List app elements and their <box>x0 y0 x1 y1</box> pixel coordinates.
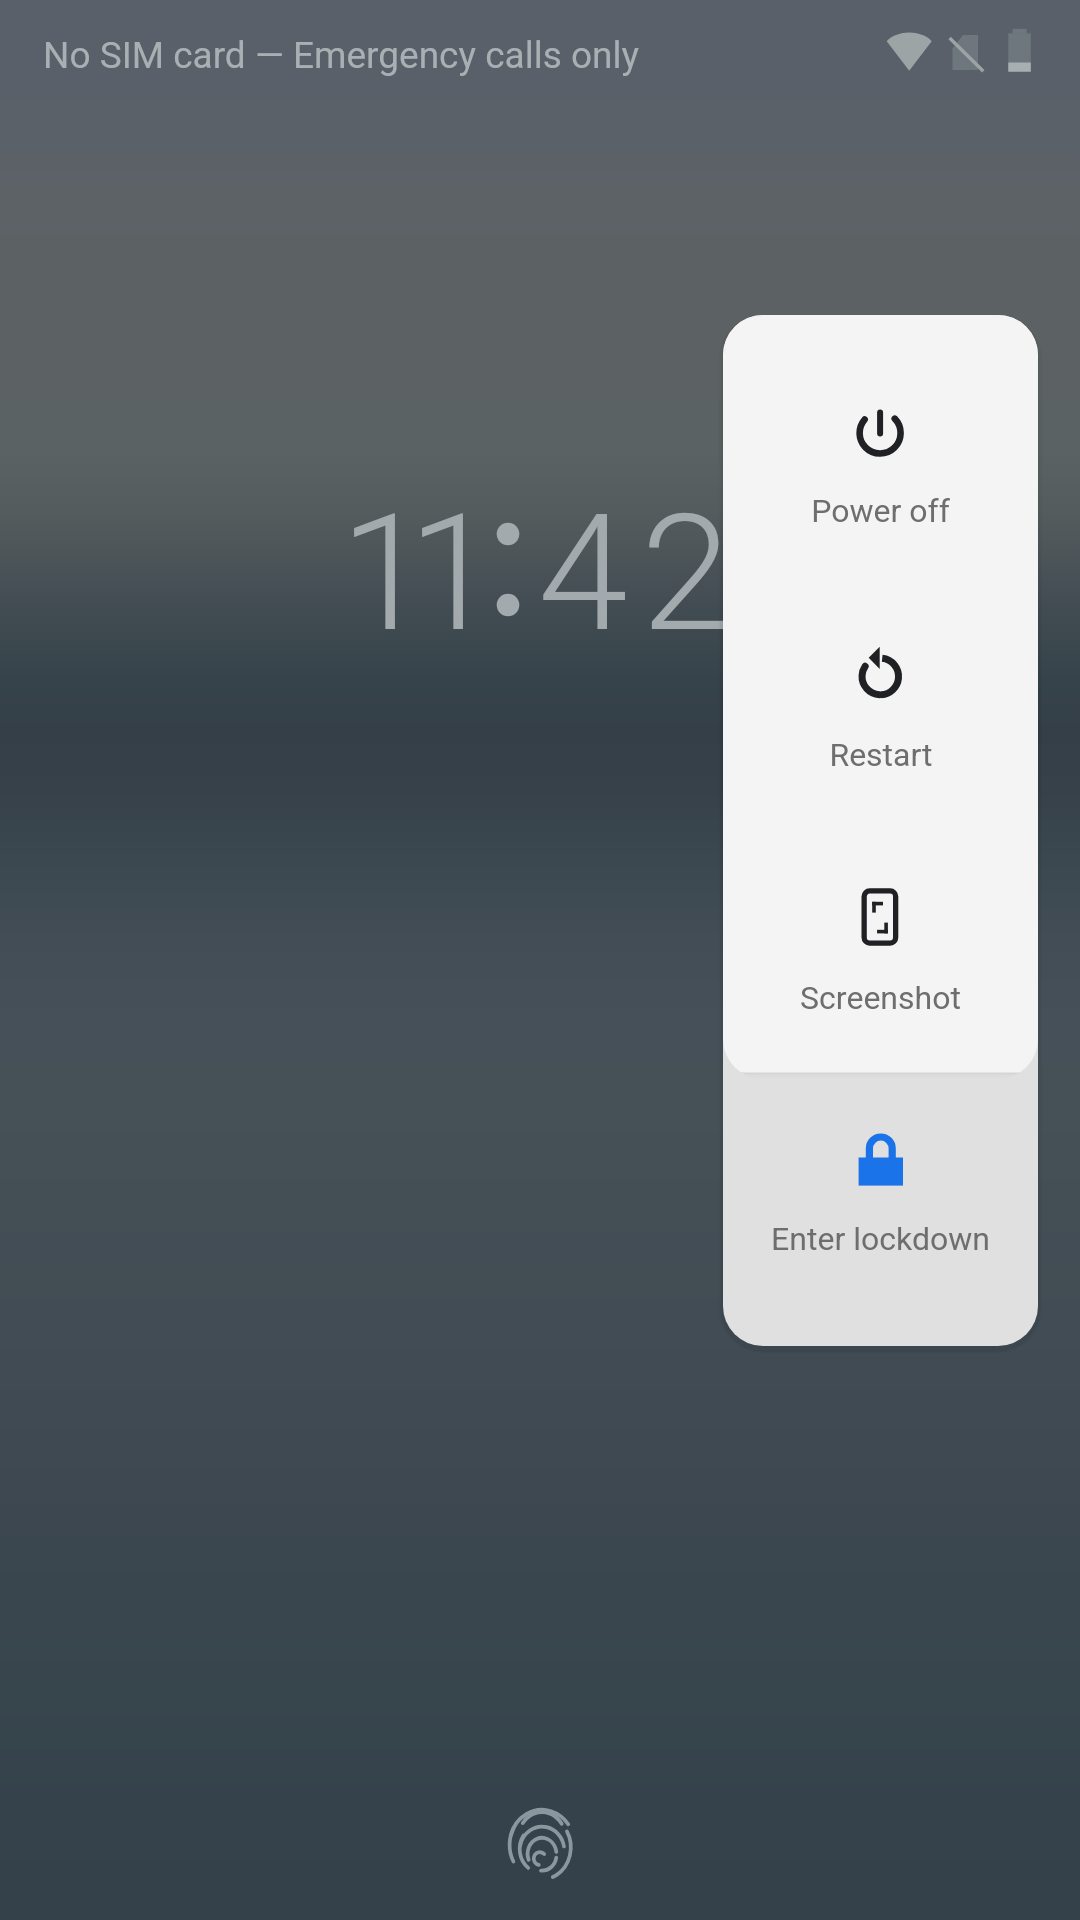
staticText: Screenshot <box>800 979 961 1017</box>
staticText: Enter lockdown <box>771 1220 990 1258</box>
button[interactable]: Restart <box>723 589 1038 799</box>
staticText: 2 <box>641 479 731 669</box>
button[interactable]: Power off <box>723 347 1038 557</box>
button[interactable]: Enter lockdown <box>723 1070 1038 1280</box>
staticText: 1 <box>340 479 430 669</box>
staticText: Power off <box>811 492 950 530</box>
staticText: 4 <box>538 479 628 669</box>
staticText: No SIM card — Emergency calls only <box>43 34 639 77</box>
button[interactable]: Fingerprint unlock <box>494 1789 590 1893</box>
staticText: 1 <box>408 479 498 669</box>
staticText: Restart <box>829 736 933 774</box>
button[interactable]: Screenshot <box>723 827 1038 1037</box>
